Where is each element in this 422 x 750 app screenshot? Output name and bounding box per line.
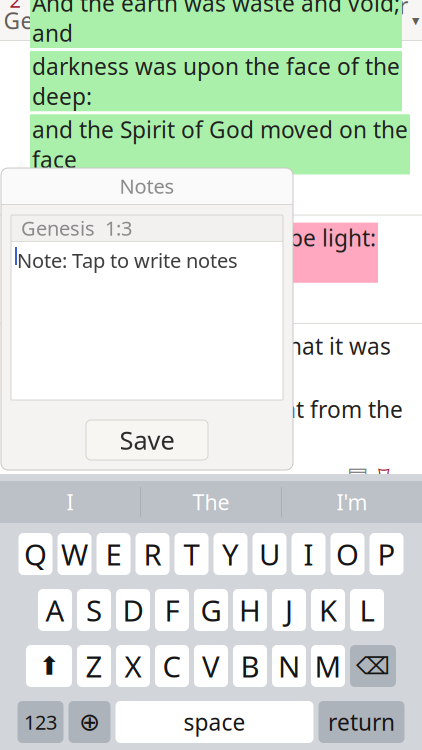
button[interactable]: K <box>311 589 345 631</box>
staticText: The <box>192 488 229 516</box>
button[interactable]: V <box>194 645 228 687</box>
staticText: Q <box>24 534 47 573</box>
staticText: 123 <box>24 709 57 735</box>
button[interactable]: Genesis <box>0 0 103 40</box>
button[interactable]: return <box>318 701 404 743</box>
staticText: 4 <box>9 330 20 356</box>
button[interactable]: Note <box>347 462 368 488</box>
staticText: M <box>314 646 341 685</box>
staticText: U <box>259 534 280 573</box>
button[interactable]: S <box>77 589 111 631</box>
staticText: Genesis 1:3 <box>21 215 132 241</box>
button[interactable]: G <box>194 589 228 631</box>
staticText: return <box>328 707 395 737</box>
button[interactable]: A <box>38 589 72 631</box>
button[interactable]: I'm <box>282 481 422 523</box>
staticText: D <box>122 590 143 629</box>
staticText: ▾ <box>412 12 419 29</box>
staticText: J <box>285 590 293 629</box>
button[interactable]: Save <box>86 420 208 460</box>
button[interactable]: R <box>135 533 169 575</box>
staticText: ⌑ <box>378 462 390 488</box>
staticText: Z <box>85 646 102 685</box>
button[interactable]: J <box>272 589 306 631</box>
staticText: and God divided the light from the <box>32 394 403 424</box>
staticText: ⌫ <box>356 652 390 680</box>
button[interactable]: W <box>57 533 91 575</box>
staticText: P <box>377 534 395 573</box>
staticText: F <box>164 590 179 629</box>
button[interactable]: C <box>155 645 189 687</box>
staticText: I <box>303 534 313 573</box>
staticText: K <box>319 590 337 629</box>
staticText: and the Spirit of God moved on the face <box>32 114 408 174</box>
button[interactable]: M <box>311 645 345 687</box>
staticText: ▲ <box>15 154 28 173</box>
button[interactable]: P <box>369 533 403 575</box>
button[interactable]: B <box>233 645 267 687</box>
button[interactable]: Chapter 1 <box>320 0 422 40</box>
button[interactable]: space <box>115 701 313 743</box>
button[interactable]: T <box>174 533 208 575</box>
staticText: C <box>162 646 181 685</box>
staticText: N <box>278 646 300 685</box>
button[interactable]: 123 <box>17 701 63 743</box>
staticText: W <box>61 534 88 573</box>
staticText: darkness he called Night. And there was <box>32 566 350 626</box>
button[interactable]: Y <box>213 533 247 575</box>
button[interactable]: H <box>233 589 267 631</box>
staticText: And God called the light Day, and the <box>32 503 389 563</box>
staticText: ASV <box>156 5 196 35</box>
staticText: B <box>240 646 259 685</box>
staticText: Notes <box>119 173 174 199</box>
staticText: darkness was upon the face of the deep: <box>32 51 400 111</box>
button[interactable]: Q <box>18 533 52 575</box>
staticText: Save <box>119 423 174 457</box>
button[interactable]: The <box>141 481 281 523</box>
staticText: R <box>143 534 161 573</box>
button[interactable]: L <box>350 589 384 631</box>
staticText: And God said, Let there be light: and th… <box>32 223 376 283</box>
staticText: 2 <box>9 0 20 13</box>
button[interactable]: D <box>116 589 150 631</box>
staticText: ⊕ <box>79 708 100 736</box>
staticText: ◯ <box>274 5 304 36</box>
button[interactable]: ASV <box>104 0 259 40</box>
staticText: 5 <box>9 502 20 528</box>
staticText: E <box>105 534 121 573</box>
staticText: G <box>200 590 221 629</box>
staticText: Note: Tap to write notes <box>17 247 238 274</box>
button[interactable]: Search <box>259 0 319 40</box>
staticText: A <box>45 590 64 629</box>
button[interactable]: E <box>96 533 130 575</box>
staticText: V <box>202 646 220 685</box>
staticText: 3 <box>9 221 20 248</box>
staticText: darkness. <box>32 427 135 457</box>
button[interactable]: I <box>0 481 140 523</box>
button[interactable]: O <box>330 533 364 575</box>
staticText: I'm <box>336 488 367 516</box>
staticText: of the waters. <box>32 177 179 208</box>
staticText: Chapter 1 <box>323 0 408 51</box>
button[interactable]: Note: Tap to write notes <box>11 242 283 400</box>
button[interactable]: ⊕ <box>68 701 110 743</box>
button[interactable]: N <box>272 645 306 687</box>
button[interactable]: I <box>291 533 325 575</box>
button[interactable]: Bookmark <box>378 462 390 488</box>
staticText: Genesis <box>3 5 88 35</box>
button[interactable]: F <box>155 589 189 631</box>
button[interactable]: U <box>252 533 286 575</box>
staticText: O <box>336 534 359 573</box>
button[interactable]: Z <box>77 645 111 687</box>
staticText: T <box>183 534 199 573</box>
staticText: And the earth was waste and void; and <box>32 0 400 48</box>
staticText: H <box>239 590 261 629</box>
staticText: space <box>183 707 245 737</box>
button[interactable]: ⌫ <box>350 645 396 687</box>
button[interactable]: X <box>116 645 150 687</box>
staticText: L <box>359 590 374 629</box>
button[interactable]: ⬆ <box>26 645 72 687</box>
staticText: ▤ <box>347 462 368 488</box>
